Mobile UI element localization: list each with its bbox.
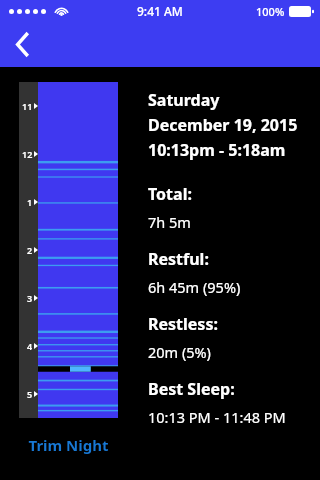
staticText: 11 bbox=[22, 100, 33, 112]
staticText: 1 bbox=[27, 196, 33, 208]
staticText: Saturday bbox=[148, 89, 220, 111]
staticText: Trim Night bbox=[28, 435, 109, 455]
staticText: Total: bbox=[148, 183, 192, 205]
staticText: 12 bbox=[22, 148, 33, 160]
staticText: 3 bbox=[27, 292, 33, 304]
button[interactable]: Back bbox=[0, 22, 46, 67]
staticText: 10:13pm - 5:18am bbox=[148, 139, 286, 161]
staticText: 7h 5m bbox=[148, 212, 191, 232]
staticText: December 19, 2015 bbox=[148, 114, 298, 136]
staticText: Restless: bbox=[148, 313, 218, 335]
staticText: Restful: bbox=[148, 248, 209, 270]
staticText: 6h 45m (95%) bbox=[148, 277, 241, 297]
button[interactable]: Trim Night bbox=[19, 428, 118, 462]
staticText: 100% bbox=[256, 4, 285, 19]
staticText: 9:41 AM bbox=[137, 3, 183, 19]
staticText: 4 bbox=[27, 340, 33, 352]
staticText: Best Sleep: bbox=[148, 378, 235, 400]
staticText: 5 bbox=[27, 388, 33, 400]
staticText: 20m (5%) bbox=[148, 342, 211, 362]
staticText: 10:13 PM - 11:48 PM bbox=[148, 407, 286, 427]
staticText: 2 bbox=[27, 244, 33, 256]
